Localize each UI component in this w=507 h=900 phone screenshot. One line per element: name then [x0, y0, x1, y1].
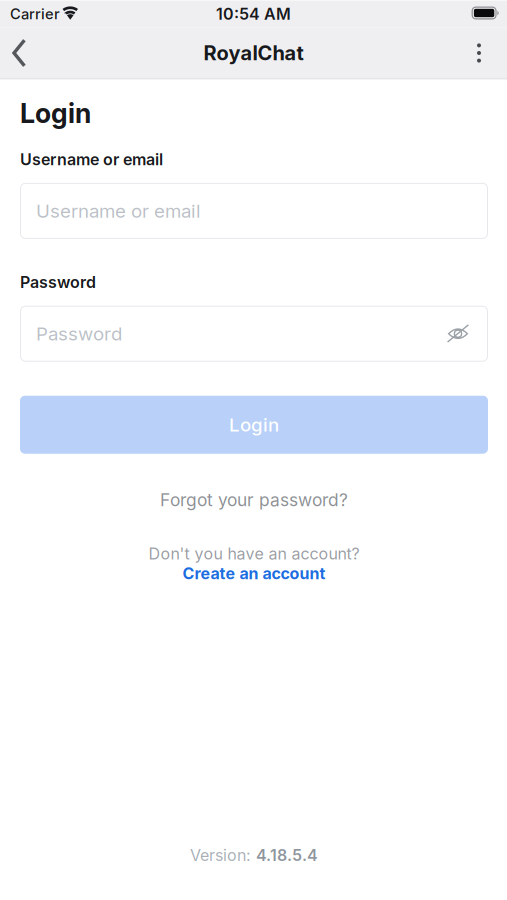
- button[interactable]: Create an account: [182, 564, 325, 583]
- staticText: Login: [20, 97, 91, 129]
- button[interactable]: Show password: [447, 324, 469, 343]
- staticText: Carrier: [10, 5, 60, 23]
- staticText: Create an account: [182, 564, 325, 583]
- button[interactable]: Forgot your password?: [160, 490, 348, 510]
- staticText: Password: [20, 273, 96, 292]
- button[interactable]: More options: [463, 29, 495, 77]
- textField[interactable]: Password: [20, 306, 488, 362]
- staticText: RoyalChat: [203, 41, 303, 65]
- staticText: Forgot your password?: [160, 490, 348, 510]
- button[interactable]: Back: [0, 27, 26, 79]
- button[interactable]: Login: [20, 396, 488, 454]
- staticText: Don't you have an account?: [148, 544, 359, 563]
- staticText: Password: [36, 323, 122, 345]
- staticText: Username or email: [36, 200, 201, 222]
- textField[interactable]: Username or email: [20, 183, 488, 239]
- staticText: Version:: [190, 846, 256, 864]
- staticText: 4.18.5.4: [256, 846, 318, 864]
- staticText: Login: [229, 414, 279, 436]
- staticText: 10:54 AM: [216, 5, 291, 23]
- staticText: Username or email: [20, 150, 163, 169]
